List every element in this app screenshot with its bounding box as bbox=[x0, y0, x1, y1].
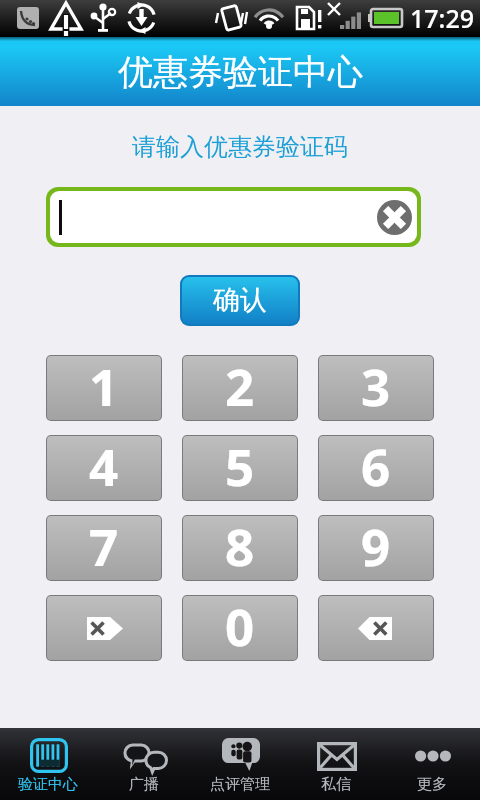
staticText: 5 bbox=[225, 436, 255, 495]
staticText: 验证中心 bbox=[18, 775, 78, 794]
button[interactable]: 1 bbox=[47, 356, 161, 420]
staticText: 更多 bbox=[417, 775, 447, 794]
staticText: 3 bbox=[361, 356, 391, 415]
button[interactable]: 验证中心 bbox=[0, 728, 96, 800]
button[interactable]: 点评管理 bbox=[192, 728, 288, 800]
staticText: 私信 bbox=[321, 775, 351, 794]
button[interactable]: 更多 bbox=[384, 728, 480, 800]
staticText: 4 bbox=[89, 436, 119, 495]
button[interactable]: 私信 bbox=[288, 728, 384, 800]
button[interactable]: 3 bbox=[319, 356, 433, 420]
staticText: 17:29 bbox=[410, 1, 475, 35]
button[interactable]: 4 bbox=[47, 436, 161, 500]
staticText: 0 bbox=[225, 596, 255, 655]
button[interactable]: 0 bbox=[183, 596, 297, 660]
staticText: 1 bbox=[89, 356, 119, 415]
button[interactable]: 5 bbox=[183, 436, 297, 500]
button[interactable]: Clear bbox=[377, 200, 412, 235]
staticText: 点评管理 bbox=[210, 775, 270, 794]
button[interactable]: 8 bbox=[183, 516, 297, 580]
button[interactable]: 9 bbox=[319, 516, 433, 580]
button[interactable]: 广播 bbox=[96, 728, 192, 800]
button[interactable]: Backspace bbox=[319, 596, 433, 660]
staticText: 请输入优惠券验证码 bbox=[132, 132, 348, 162]
staticText: 6 bbox=[361, 436, 391, 495]
button[interactable]: Clear all bbox=[47, 596, 161, 660]
button[interactable]: 2 bbox=[183, 356, 297, 420]
staticText: 2 bbox=[225, 356, 255, 415]
staticText: 确认 bbox=[213, 283, 267, 317]
button[interactable]: Clear bbox=[50, 191, 417, 243]
staticText: 7 bbox=[89, 516, 119, 575]
button[interactable]: 6 bbox=[319, 436, 433, 500]
staticText: 优惠券验证中心 bbox=[118, 50, 363, 94]
button[interactable]: 确认 bbox=[182, 277, 298, 324]
button[interactable]: 7 bbox=[47, 516, 161, 580]
staticText: 8 bbox=[225, 516, 255, 575]
staticText: 广播 bbox=[129, 775, 159, 794]
staticText: 9 bbox=[361, 516, 391, 575]
